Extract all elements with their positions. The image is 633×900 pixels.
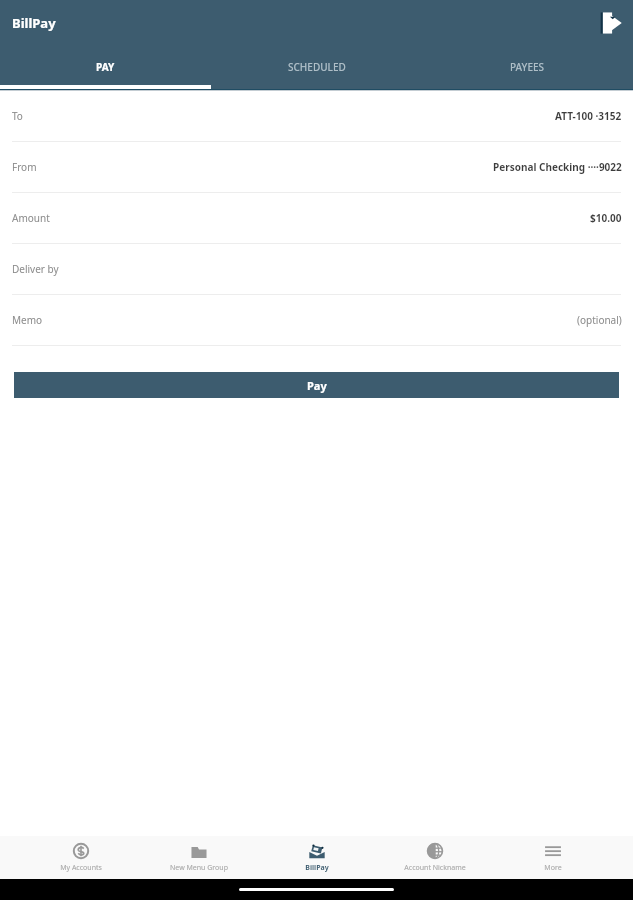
- staticText: SCHEDULED: [288, 60, 346, 74]
- staticText: PAY: [96, 60, 115, 74]
- button[interactable]: New Menu Group: [140, 836, 258, 879]
- button[interactable]: Send payment: [597, 9, 625, 37]
- staticText: $10.00: [590, 211, 622, 225]
- button[interactable]: Amount: [0, 193, 633, 244]
- staticText: From: [12, 160, 37, 174]
- staticText: Account Nickname: [404, 863, 466, 873]
- button[interactable]: Memo: [0, 295, 633, 346]
- staticText: New Menu Group: [170, 863, 228, 873]
- staticText: BillPay: [305, 863, 329, 873]
- staticText: ATT-100 ·3152: [555, 109, 622, 123]
- staticText: (optional): [577, 313, 622, 327]
- staticText: Memo: [12, 313, 43, 327]
- button[interactable]: Pay: [14, 372, 619, 398]
- button[interactable]: My Accounts: [21, 836, 140, 879]
- button[interactable]: BillPay: [258, 836, 376, 879]
- button[interactable]: SCHEDULED: [211, 45, 422, 89]
- staticText: Personal Checking ····9022: [493, 160, 622, 174]
- staticText: My Accounts: [60, 863, 102, 873]
- button[interactable]: From: [0, 142, 633, 193]
- staticText: Deliver by: [12, 262, 59, 276]
- button[interactable]: To: [0, 91, 633, 142]
- button[interactable]: More: [494, 836, 612, 879]
- button[interactable]: Account Nickname: [376, 836, 494, 879]
- staticText: PAYEES: [510, 60, 545, 74]
- staticText: Amount: [12, 211, 50, 225]
- staticText: More: [544, 863, 562, 873]
- button[interactable]: Deliver by: [0, 244, 633, 295]
- staticText: To: [12, 109, 23, 123]
- button[interactable]: PAY: [0, 45, 211, 89]
- staticText: Pay: [307, 378, 327, 393]
- button[interactable]: PAYEES: [422, 45, 633, 89]
- staticText: BillPay: [12, 14, 56, 32]
